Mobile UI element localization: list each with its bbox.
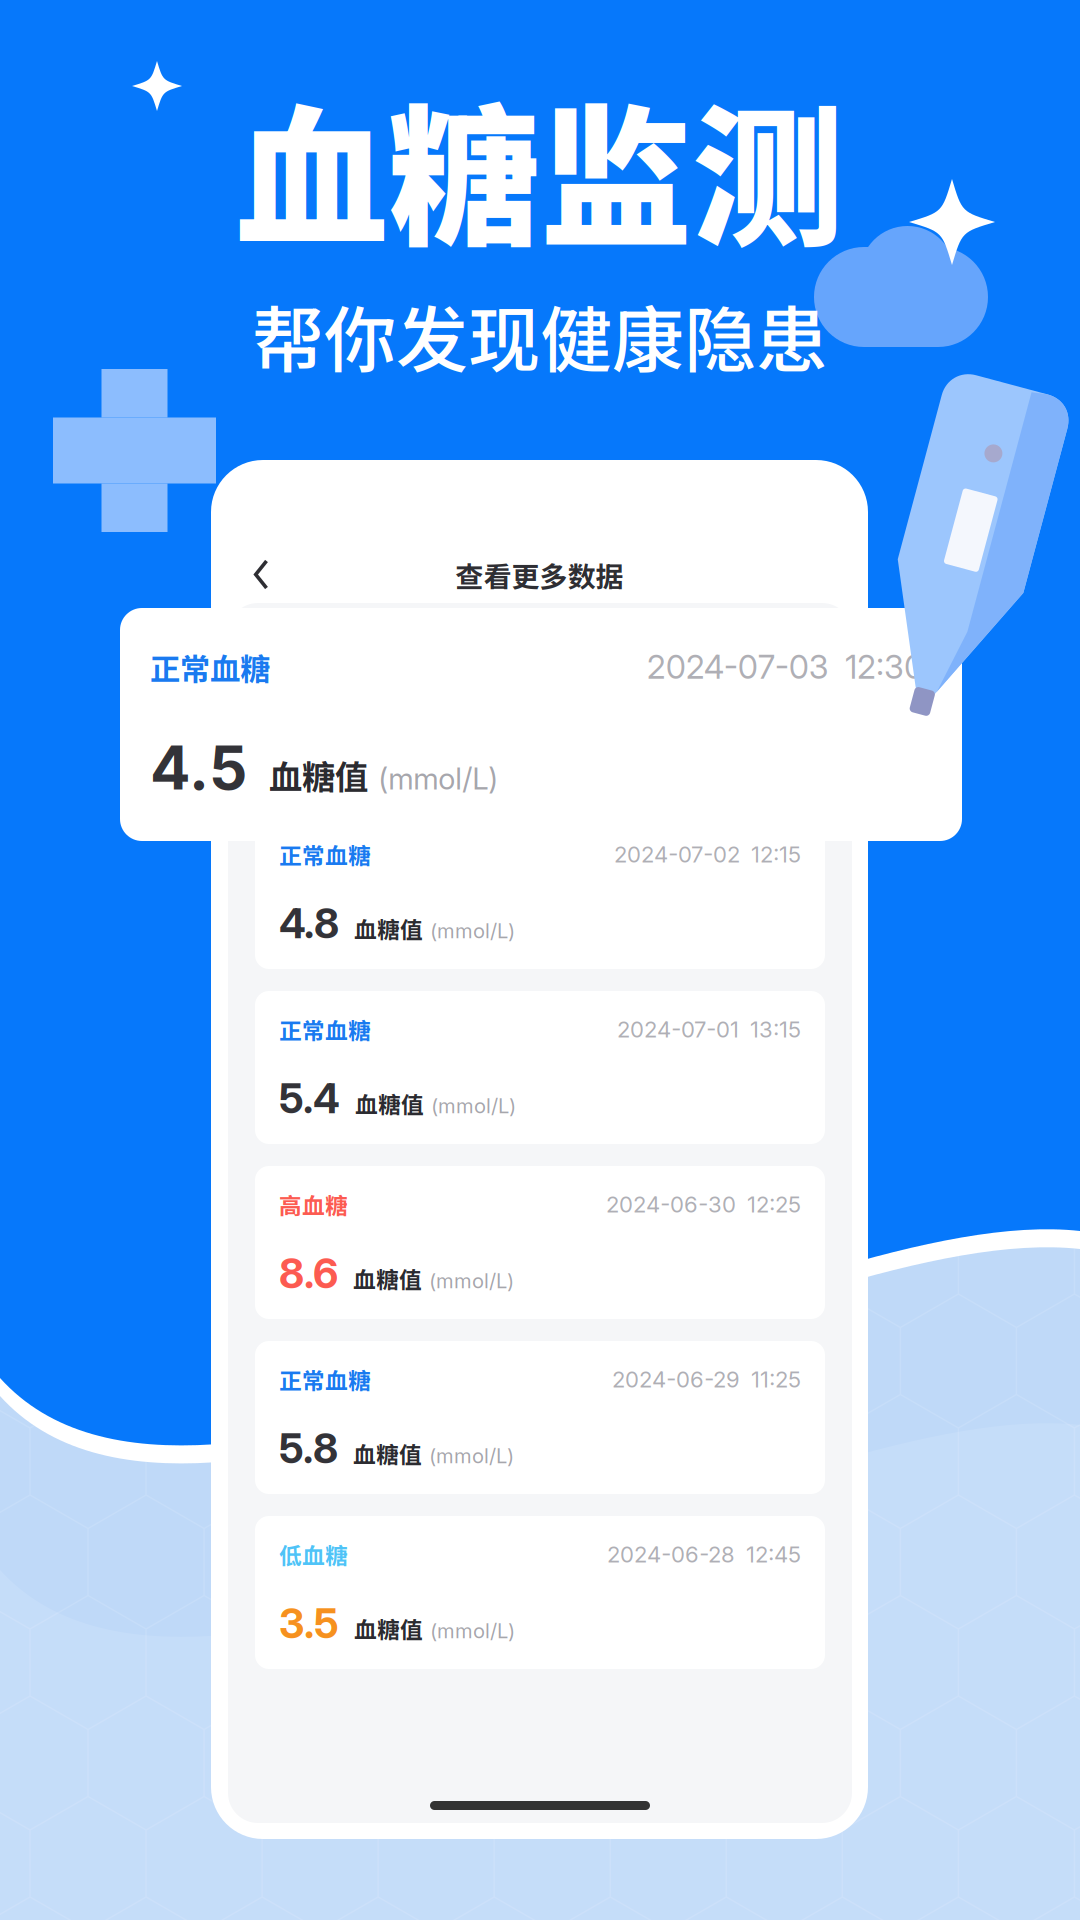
button[interactable]: 低血糖 <box>255 1516 825 1669</box>
staticText: 2024-06-30 <box>606 1191 736 1218</box>
staticText: 2024-07-02 <box>614 841 740 868</box>
staticText: 血糖值 <box>269 751 368 799</box>
staticText: 5.4 <box>279 1074 340 1123</box>
button[interactable]: 正常血糖 <box>120 608 962 841</box>
staticText: 5.8 <box>279 1424 338 1473</box>
staticText: 4.8 <box>279 899 339 948</box>
staticText: 血糖值 <box>353 1437 422 1470</box>
staticText: 血糖值 <box>354 737 423 770</box>
staticText: 正常血糖 <box>279 838 371 871</box>
staticText: 查看更多数据 <box>455 555 623 595</box>
staticText: 2024-06-29 <box>612 1366 740 1393</box>
staticText: 12:45 <box>746 1541 801 1568</box>
staticText: 帮你发现健康隐患 <box>252 283 828 387</box>
staticText: 血糖值 <box>354 1612 423 1645</box>
staticText: 正常血糖 <box>279 1363 371 1396</box>
button[interactable]: Back <box>240 547 283 603</box>
staticText: 8.6 <box>279 1249 338 1298</box>
staticText: 血糖值 <box>354 912 423 945</box>
staticText: (mmol/L) <box>378 761 498 797</box>
staticText: 12:30 <box>745 666 801 693</box>
staticText: 11:25 <box>751 1366 801 1393</box>
staticText: 4.5 <box>150 731 247 804</box>
button[interactable]: 高血糖 <box>255 1166 825 1319</box>
staticText: (mmol/L) <box>430 919 515 943</box>
staticText: 12:15 <box>751 841 801 868</box>
staticText: 高血糖 <box>279 1188 348 1221</box>
staticText: 正常血糖 <box>150 645 270 689</box>
staticText: (mmol/L) <box>429 1444 514 1468</box>
staticText: 血糖监测 <box>236 57 844 277</box>
button[interactable]: 正常血糖 <box>255 816 825 969</box>
staticText: 2024-06-28 <box>607 1541 735 1568</box>
staticText: 4.5 <box>279 724 339 773</box>
staticText: 低血糖 <box>279 1538 348 1571</box>
staticText: 血糖值 <box>355 1087 424 1120</box>
staticText: 2024-07-03 <box>607 666 734 693</box>
staticText: 正常血糖 <box>279 1013 371 1046</box>
staticText: (mmol/L) <box>431 1094 516 1118</box>
staticText: 2024-07-01 <box>617 1016 739 1043</box>
button[interactable]: 正常血糖 <box>255 991 825 1144</box>
staticText: (mmol/L) <box>430 1619 515 1643</box>
staticText: 13:15 <box>750 1016 801 1043</box>
button[interactable]: 正常血糖 <box>255 1341 825 1494</box>
staticText: 2024-07-03 <box>647 647 829 687</box>
staticText: (mmol/L) <box>429 1269 514 1293</box>
staticText: 12:25 <box>747 1191 801 1218</box>
staticText: 血糖值 <box>353 1262 422 1295</box>
button[interactable]: 正常血糖 <box>255 641 825 794</box>
staticText: 3.5 <box>279 1599 339 1648</box>
staticText: 12:30 <box>845 647 924 687</box>
staticText: (mmol/L) <box>430 744 515 768</box>
